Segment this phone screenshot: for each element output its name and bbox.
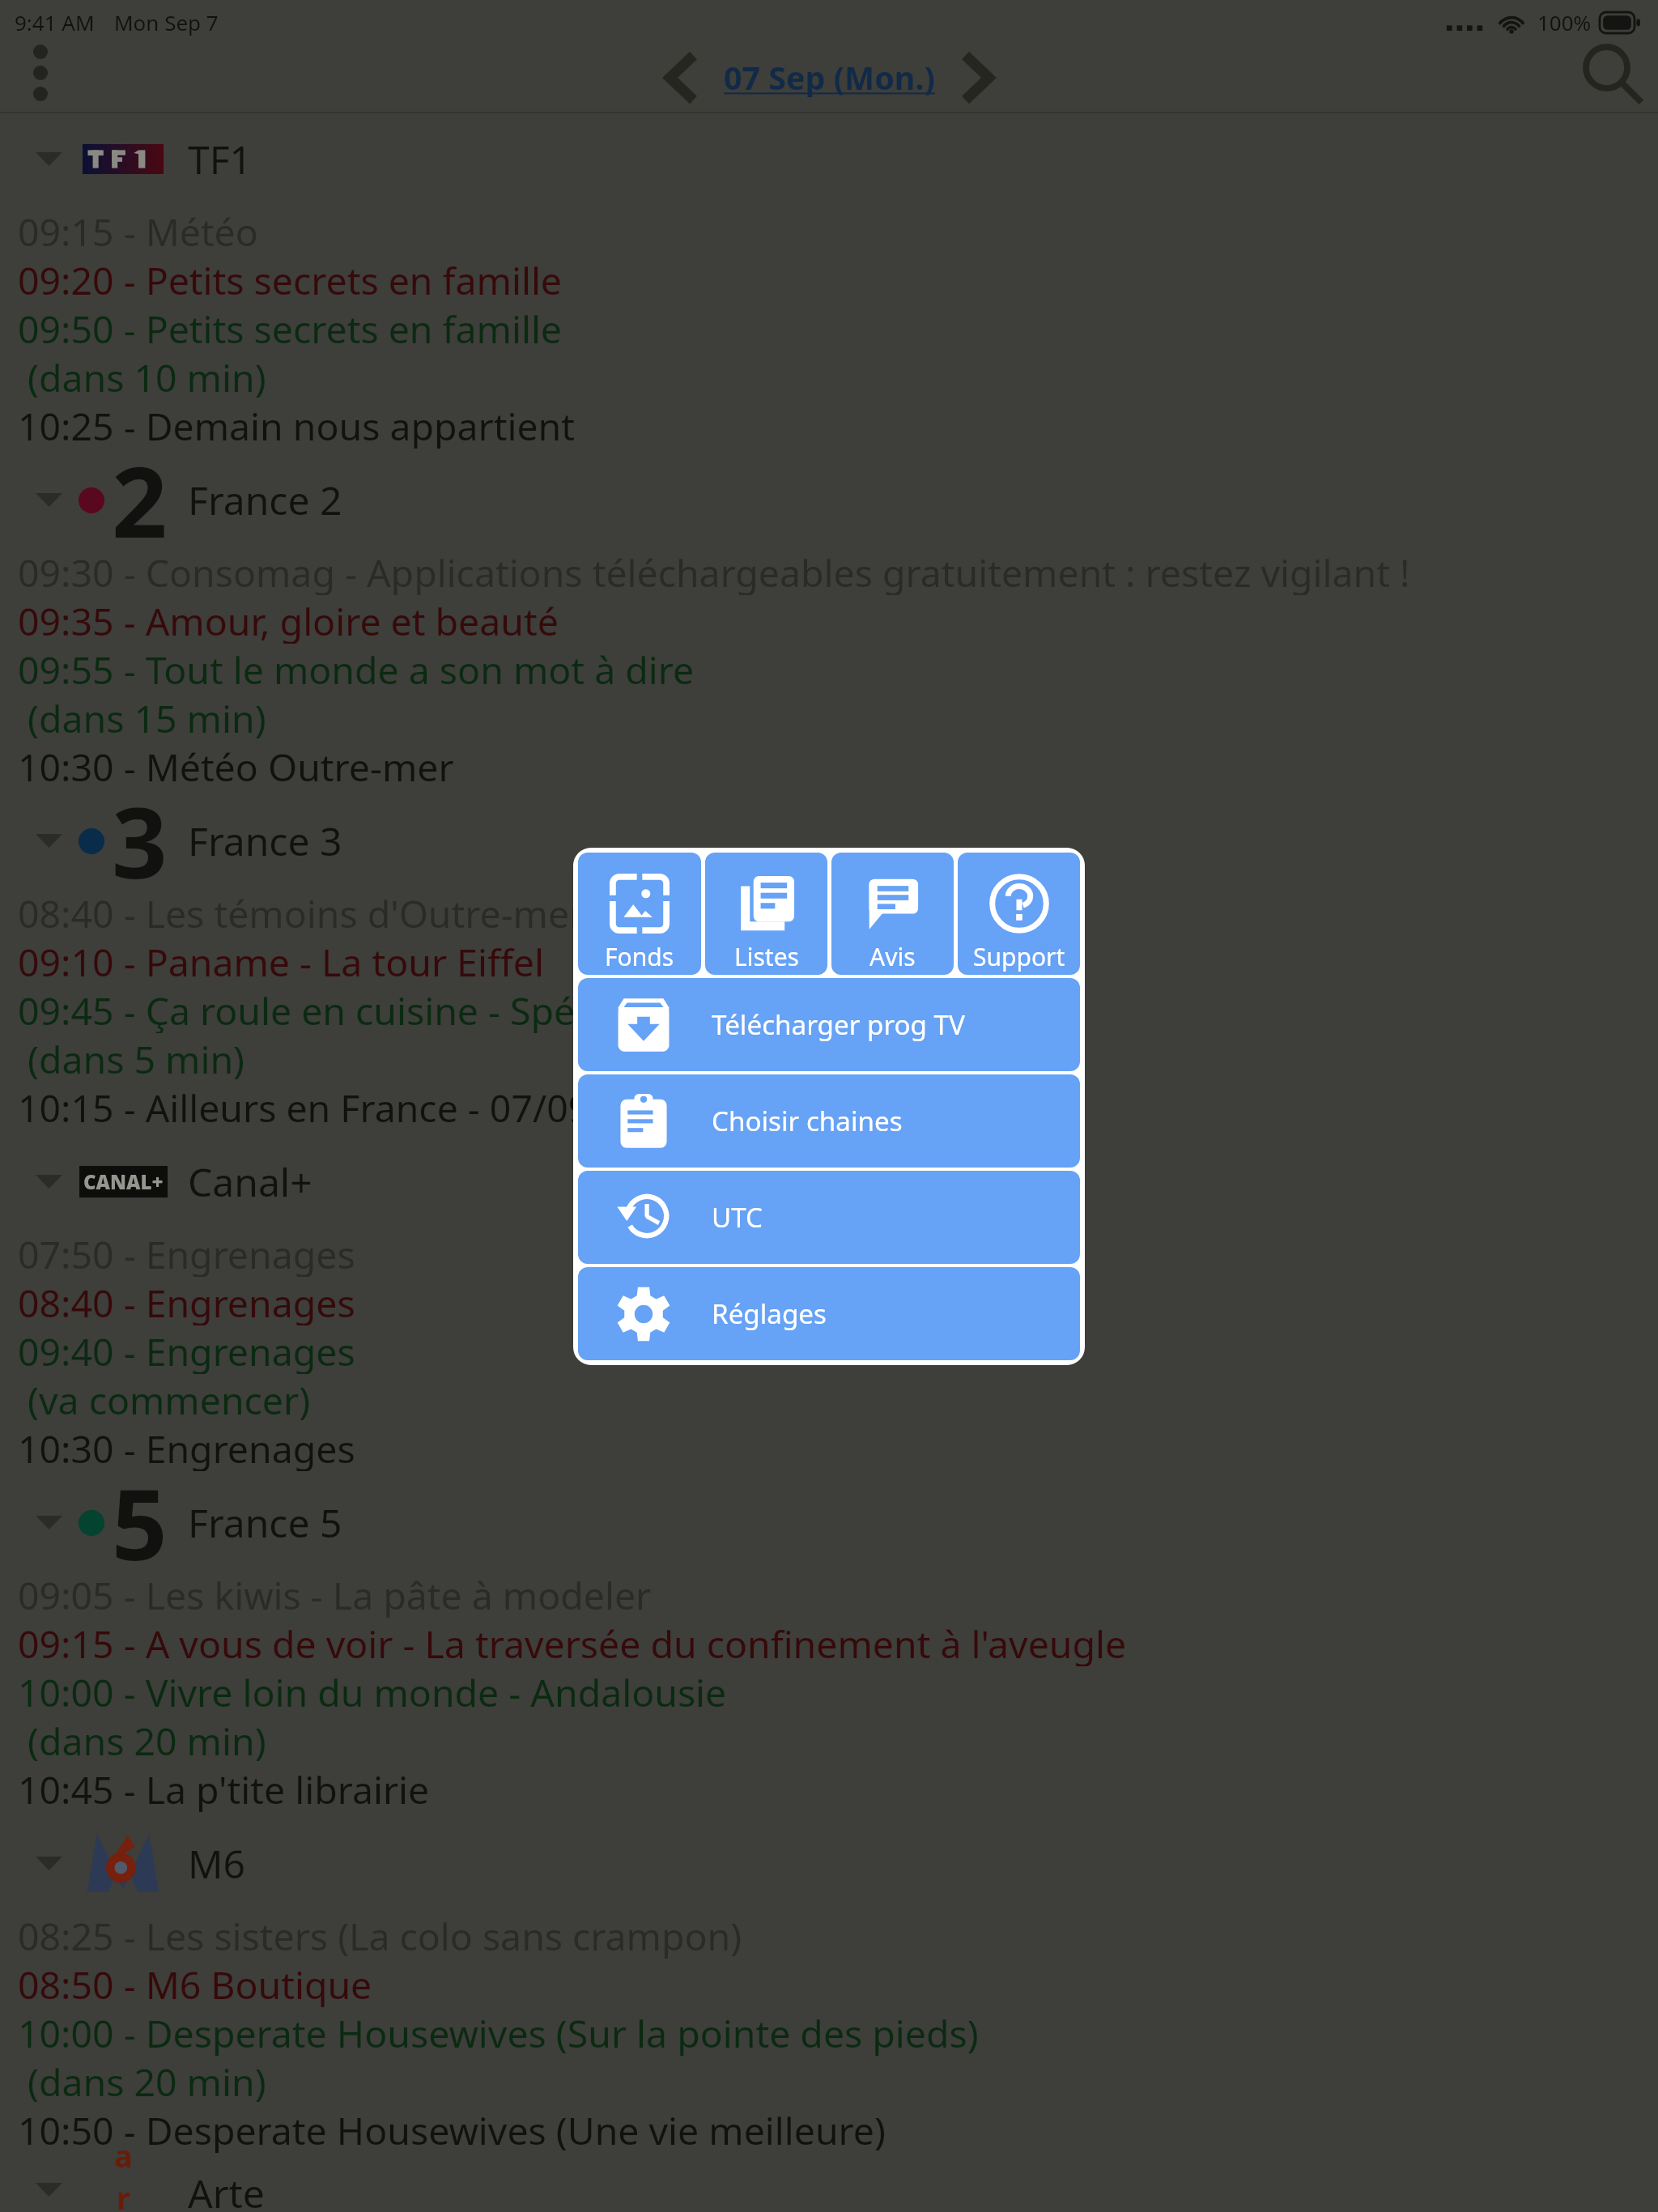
button[interactable]: 10:00 - Desperate Housewives (Sur la poi…: [0, 2007, 1658, 2056]
button[interactable]: Search: [1569, 44, 1658, 112]
staticText: 08:25 - Les sisters (La colo sans crampo…: [18, 1910, 742, 1959]
staticText: 10:30 - Météo Outre-mer: [18, 741, 454, 789]
staticText: UTC: [712, 1199, 763, 1236]
button[interactable]: Choisir chaines: [578, 1074, 1080, 1168]
staticText: 9:41 AM: [15, 8, 95, 36]
button[interactable]: 09:30 - Consomag - Applications téléchar…: [0, 547, 1658, 595]
staticText: France 5: [188, 1496, 342, 1549]
staticText: France 2: [188, 474, 342, 526]
staticText: r: [117, 2176, 130, 2212]
button[interactable]: (va commencer): [0, 1374, 1658, 1423]
button[interactable]: 08:25 - Les sisters (La colo sans crampo…: [0, 1910, 1658, 1959]
staticText: Réglages: [712, 1295, 827, 1332]
button[interactable]: 09:45 - Ça roule en cuisine - Spécial Su…: [0, 985, 1658, 1033]
button[interactable]: UTC: [578, 1171, 1080, 1264]
button[interactable]: Next day: [940, 44, 1014, 112]
staticText: Choisir chaines: [712, 1103, 903, 1139]
button[interactable]: Listes: [705, 853, 827, 975]
button[interactable]: 10:25 - Demain nous appartient: [0, 400, 1658, 449]
button[interactable]: 07 Sep (Mon.): [724, 56, 935, 100]
button[interactable]: CANAL+: [0, 1144, 1658, 1219]
staticText: (dans 20 min): [18, 2056, 266, 2104]
staticText: Support: [973, 940, 1065, 973]
button[interactable]: (dans 5 min): [0, 1033, 1658, 1082]
staticText: 10:25 - Demain nous appartient: [18, 400, 576, 449]
staticText: 09:15 - Météo: [18, 206, 258, 254]
button[interactable]: Fonds: [578, 853, 701, 975]
button[interactable]: Réglages: [578, 1267, 1080, 1360]
staticText: 09:35 - Amour, gloire et beauté: [18, 595, 559, 644]
button[interactable]: 10:00 - Vivre loin du monde - Andalousie: [0, 1666, 1658, 1715]
staticText: a: [114, 2134, 133, 2176]
staticText: 07:50 - Engrenages: [18, 1228, 355, 1277]
button[interactable]: (dans 15 min): [0, 692, 1658, 741]
staticText: Mon Sep 7: [114, 8, 219, 36]
button[interactable]: 10:50 - Desperate Housewives (Une vie me…: [0, 2104, 1658, 2153]
staticText: 100%: [1537, 8, 1592, 36]
staticText: M6: [188, 1837, 245, 1890]
button[interactable]: (dans 20 min): [0, 2056, 1658, 2104]
staticText: 09:55 - Tout le monde a son mot à dire: [18, 644, 695, 692]
staticText: (dans 15 min): [18, 692, 266, 741]
staticText: France 3: [188, 815, 342, 867]
staticText: 07 Sep (Mon.): [724, 56, 935, 100]
button[interactable]: More options: [0, 44, 81, 112]
button[interactable]: 10:15 - Ailleurs en France - 07/09/2020: [0, 1082, 1658, 1130]
staticText: (dans 10 min): [18, 351, 266, 400]
staticText: Canal+: [188, 1155, 312, 1208]
staticText: Arte: [188, 2167, 265, 2212]
staticText: 10:50 - Desperate Housewives (Une vie me…: [18, 2104, 886, 2153]
staticText: 09:30 - Consomag - Applications téléchar…: [18, 547, 1410, 595]
button[interactable]: TF1: [0, 121, 1658, 196]
button[interactable]: (dans 20 min): [0, 1715, 1658, 1763]
button[interactable]: 09:10 - Paname - La tour Eiffel: [0, 936, 1658, 985]
staticText: Listes: [734, 940, 799, 973]
staticText: (dans 20 min): [18, 1715, 266, 1763]
staticText: 09:40 - Engrenages: [18, 1325, 355, 1374]
button[interactable]: 09:05 - Les kiwis - La pâte à modeler: [0, 1569, 1658, 1618]
staticText: 10:30 - Engrenages: [18, 1423, 355, 1471]
staticText: 5: [112, 1457, 168, 1589]
button[interactable]: 3: [0, 803, 1658, 878]
button[interactable]: M6: [0, 1826, 1658, 1900]
button[interactable]: 2: [0, 462, 1658, 537]
button[interactable]: Previous day: [644, 44, 719, 112]
staticText: Télécharger prog TV: [712, 1006, 965, 1043]
staticText: CANAL+: [83, 1168, 164, 1195]
staticText: 09:50 - Petits secrets en famille: [18, 303, 563, 351]
button[interactable]: 08:40 - Les témoins d'Outre-mer: [0, 887, 1658, 936]
staticText: 08:40 - Engrenages: [18, 1277, 355, 1325]
staticText: 09:45 - Ça roule en cuisine - Spécial Su…: [18, 985, 828, 1033]
button[interactable]: 08:50 - M6 Boutique: [0, 1959, 1658, 2007]
button[interactable]: 09:15 - A vous de voir - La traversée du…: [0, 1618, 1658, 1666]
button[interactable]: 10:30 - Météo Outre-mer: [0, 741, 1658, 789]
button[interactable]: Support: [958, 853, 1080, 975]
staticText: (dans 5 min): [18, 1033, 245, 1082]
staticText: Fonds: [605, 940, 674, 973]
button[interactable]: 08:40 - Engrenages: [0, 1277, 1658, 1325]
button[interactable]: Avis: [831, 853, 954, 975]
button[interactable]: 09:20 - Petits secrets en famille: [0, 254, 1658, 303]
staticText: 10:00 - Desperate Housewives (Sur la poi…: [18, 2007, 979, 2056]
staticText: Avis: [869, 940, 916, 973]
button[interactable]: a: [0, 2167, 1658, 2212]
button[interactable]: 09:55 - Tout le monde a son mot à dire: [0, 644, 1658, 692]
staticText: 3: [112, 775, 168, 907]
staticText: 08:50 - M6 Boutique: [18, 1959, 372, 2007]
button[interactable]: 09:50 - Petits secrets en famille: [0, 303, 1658, 351]
button[interactable]: 10:45 - La p'tite librairie: [0, 1763, 1658, 1812]
staticText: 09:15 - A vous de voir - La traversée du…: [18, 1618, 1127, 1666]
staticText: (va commencer): [18, 1374, 311, 1423]
button[interactable]: 09:40 - Engrenages: [0, 1325, 1658, 1374]
button[interactable]: 10:30 - Engrenages: [0, 1423, 1658, 1471]
button[interactable]: 09:35 - Amour, gloire et beauté: [0, 595, 1658, 644]
button[interactable]: 5: [0, 1485, 1658, 1559]
button[interactable]: (dans 10 min): [0, 351, 1658, 400]
button[interactable]: 07:50 - Engrenages: [0, 1228, 1658, 1277]
button[interactable]: Télécharger prog TV: [578, 978, 1080, 1071]
staticText: 08:40 - Les témoins d'Outre-mer: [18, 887, 585, 936]
staticText: 2: [112, 434, 168, 566]
staticText: 10:00 - Vivre loin du monde - Andalousie: [18, 1666, 727, 1715]
staticText: 09:20 - Petits secrets en famille: [18, 254, 563, 303]
